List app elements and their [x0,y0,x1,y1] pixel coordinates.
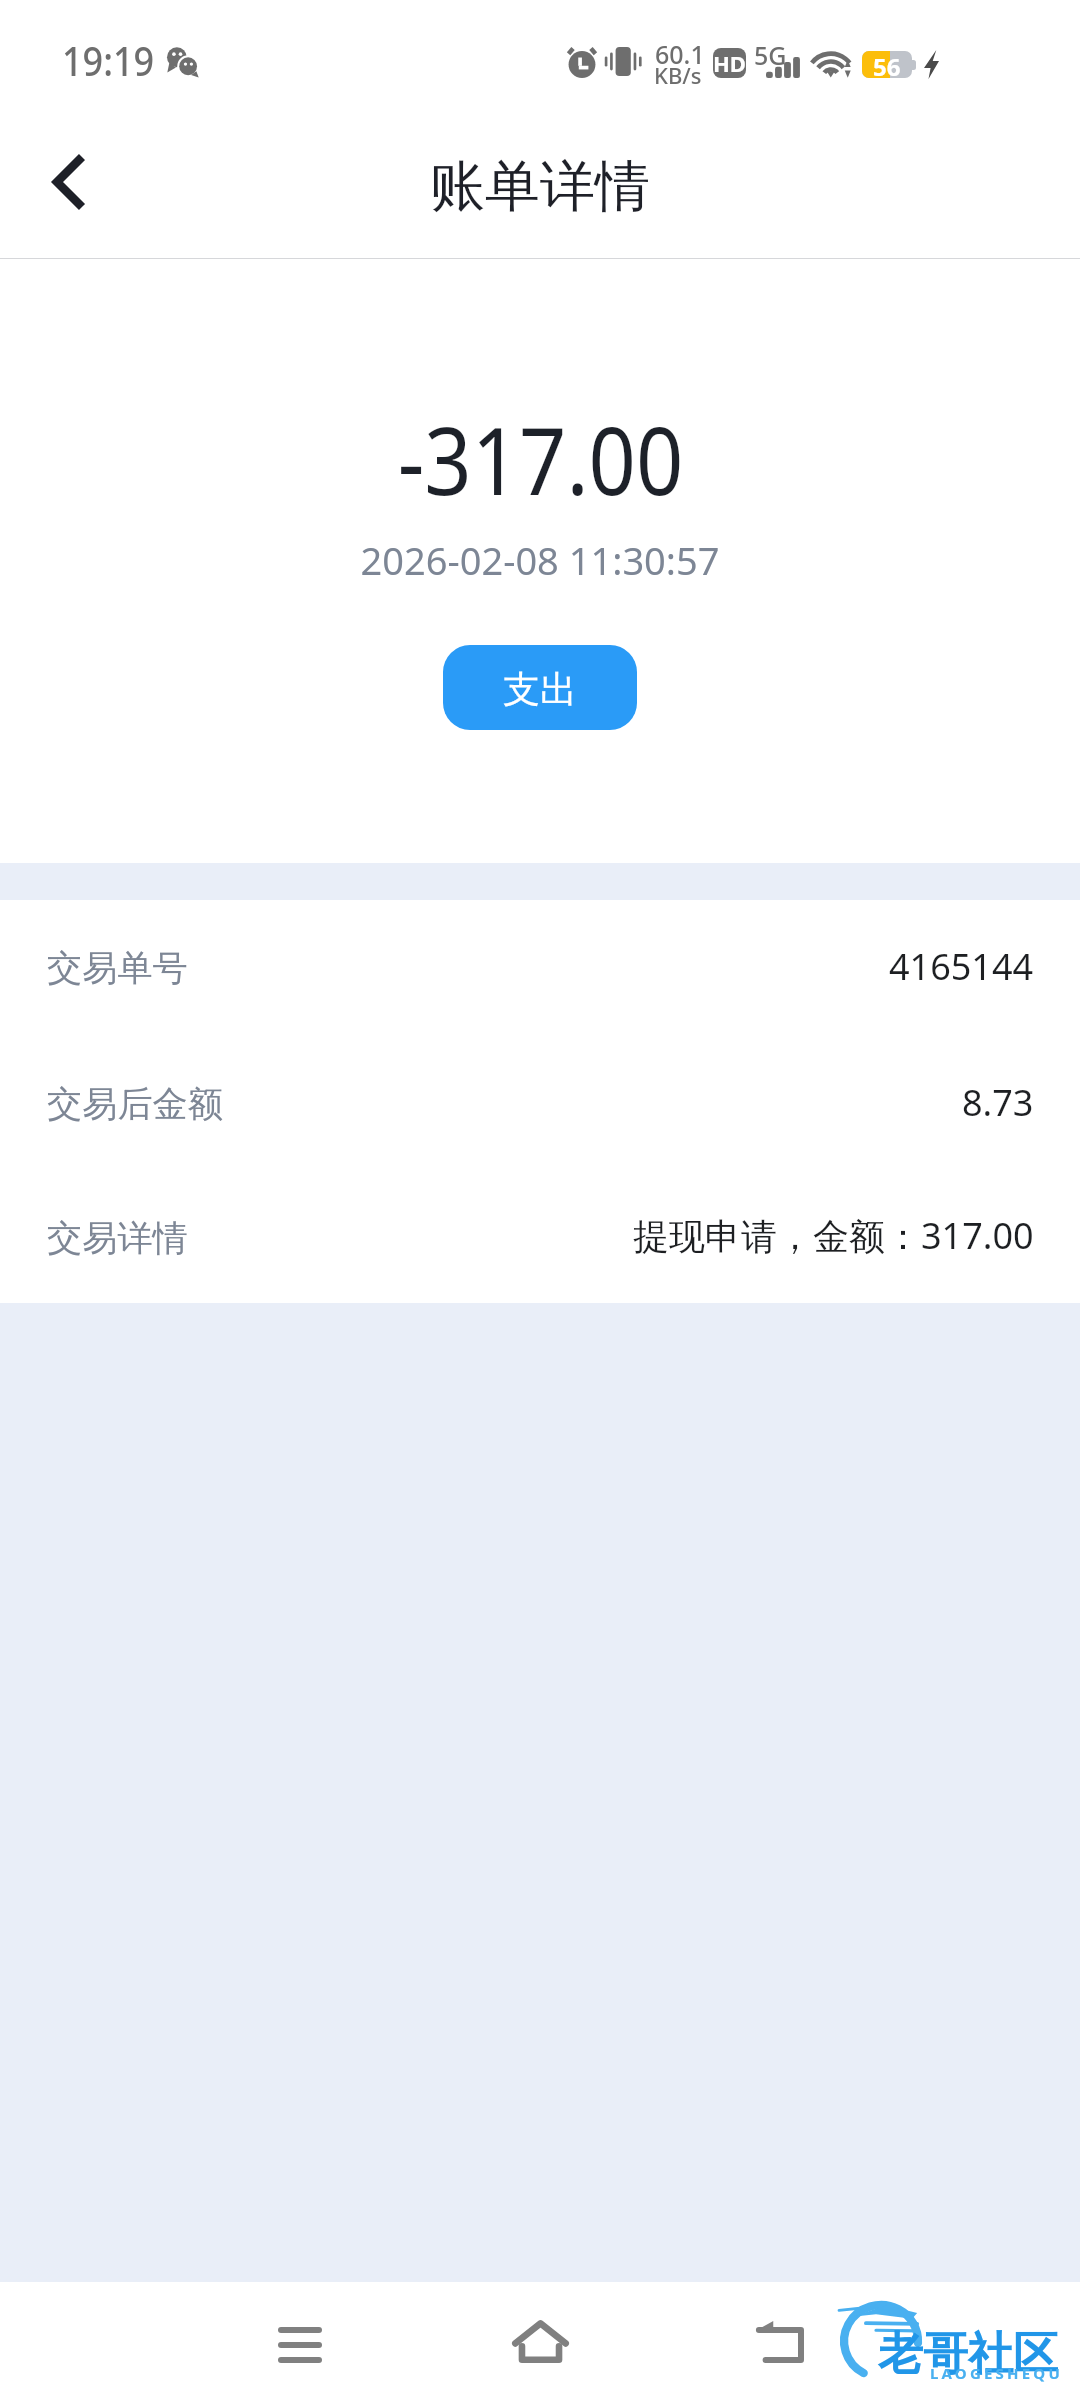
staticText: KB/s [654,60,702,90]
button[interactable]: 交易后金额 [0,1036,1080,1172]
staticText: 2026-02-08 11:30:57 [360,534,720,586]
staticText: -317.00 [397,395,684,515]
staticText: 老哥社区 [878,2326,1058,2383]
button[interactable]: 交易详情 [0,1172,1080,1303]
staticText: 账单详情 [430,152,650,221]
staticText: 支出 [503,666,577,713]
button[interactable]: Back [13,127,123,237]
staticText: 4165144 [889,942,1034,991]
button[interactable]: 支出 [443,645,637,730]
staticText: 60.1 [655,37,705,71]
staticText: 交易详情 [47,1216,188,1260]
staticText: 交易后金额 [47,1082,223,1126]
button[interactable]: Home [485,2286,595,2396]
staticText: 提现申请，金额：317.00 [633,1211,1034,1260]
staticText: 5G [754,38,787,72]
staticText: 56 [873,50,901,83]
staticText: HD [713,48,746,78]
staticText: 8.73 [962,1078,1034,1127]
staticText: 交易单号 [47,946,188,990]
button[interactable]: Recent apps [245,2290,355,2400]
staticText: LAOGESHEQU [930,2363,1063,2383]
button[interactable]: 交易单号 [0,900,1080,1036]
staticText: 19:19 [62,33,155,87]
button[interactable]: Back [725,2287,835,2397]
